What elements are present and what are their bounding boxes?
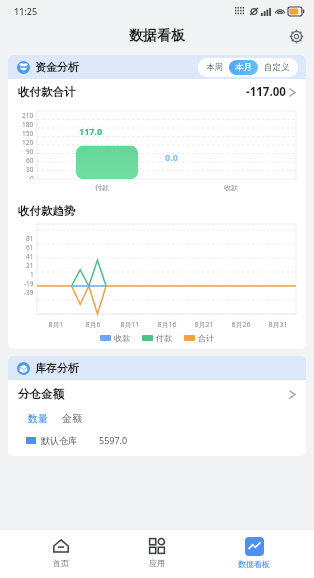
staticText: 本周 bbox=[206, 62, 223, 73]
staticText: 41 bbox=[26, 252, 34, 261]
staticText: 付款 bbox=[156, 333, 172, 343]
staticText: 数据看板 bbox=[238, 559, 270, 569]
staticText: 分仓金额 bbox=[18, 387, 64, 401]
staticText: 8月1 bbox=[48, 320, 64, 330]
staticText: 付款 bbox=[95, 183, 109, 192]
staticText: 0 bbox=[30, 174, 34, 179]
button[interactable]: 金额 bbox=[60, 410, 84, 427]
staticText: 库存分析 bbox=[35, 361, 79, 375]
staticText: 0.0 bbox=[165, 151, 178, 163]
staticText: 60 bbox=[26, 156, 34, 165]
staticText: 应用 bbox=[149, 558, 165, 568]
staticText: 81 bbox=[26, 234, 34, 243]
staticText: 收付款趋势 bbox=[18, 204, 76, 218]
staticText: 120 bbox=[22, 138, 34, 147]
staticText: 5597.0 bbox=[99, 434, 128, 446]
button[interactable]: 数据看板 bbox=[218, 535, 290, 571]
staticText: 8月16 bbox=[157, 320, 177, 330]
staticText: 数量 bbox=[28, 412, 48, 425]
staticText: -39 bbox=[24, 288, 34, 297]
button[interactable]: 首页 bbox=[25, 535, 97, 570]
button[interactable]: 数量 bbox=[26, 410, 50, 427]
staticText: 8月21 bbox=[194, 320, 214, 330]
staticText: 150 bbox=[22, 129, 34, 138]
staticText: 90 bbox=[26, 147, 34, 156]
button[interactable]: 本月 bbox=[229, 60, 258, 75]
staticText: 本月 bbox=[235, 62, 252, 73]
staticText: 210 bbox=[22, 111, 34, 120]
staticText: 收款 bbox=[224, 183, 238, 192]
button[interactable]: 分仓金额 bbox=[8, 380, 306, 408]
staticText: 117.0 bbox=[79, 125, 103, 137]
staticText: 合计 bbox=[198, 333, 214, 343]
staticText: 61 bbox=[26, 243, 34, 252]
staticText: 自定义 bbox=[264, 62, 290, 73]
staticText: 11:25 bbox=[14, 5, 38, 17]
staticText: 8月11 bbox=[120, 320, 140, 330]
staticText: 8月26 bbox=[231, 320, 251, 330]
button[interactable]: 自定义 bbox=[258, 60, 296, 75]
staticText: 180 bbox=[22, 120, 34, 129]
staticText: -19 bbox=[24, 279, 34, 288]
staticText: 默认仓库 bbox=[41, 435, 77, 446]
staticText: 8月6 bbox=[85, 320, 101, 330]
staticText: 收付款合计 bbox=[18, 85, 76, 99]
button[interactable]: 应用 bbox=[121, 535, 193, 570]
button[interactable]: 本周 bbox=[200, 60, 229, 75]
staticText: -117.00 bbox=[246, 84, 286, 100]
staticText: 金额 bbox=[62, 412, 82, 425]
button[interactable]: Settings bbox=[286, 26, 306, 46]
staticText: 资金分析 bbox=[35, 60, 79, 74]
staticText: 收款 bbox=[114, 333, 130, 343]
button[interactable]: 收付款合计 bbox=[8, 79, 306, 105]
staticText: 30 bbox=[26, 165, 34, 174]
staticText: 1 bbox=[30, 270, 34, 279]
staticText: 8月31 bbox=[268, 320, 288, 330]
staticText: 21 bbox=[26, 261, 34, 270]
staticText: 首页 bbox=[53, 558, 69, 568]
staticText: 数据看板 bbox=[129, 27, 185, 45]
